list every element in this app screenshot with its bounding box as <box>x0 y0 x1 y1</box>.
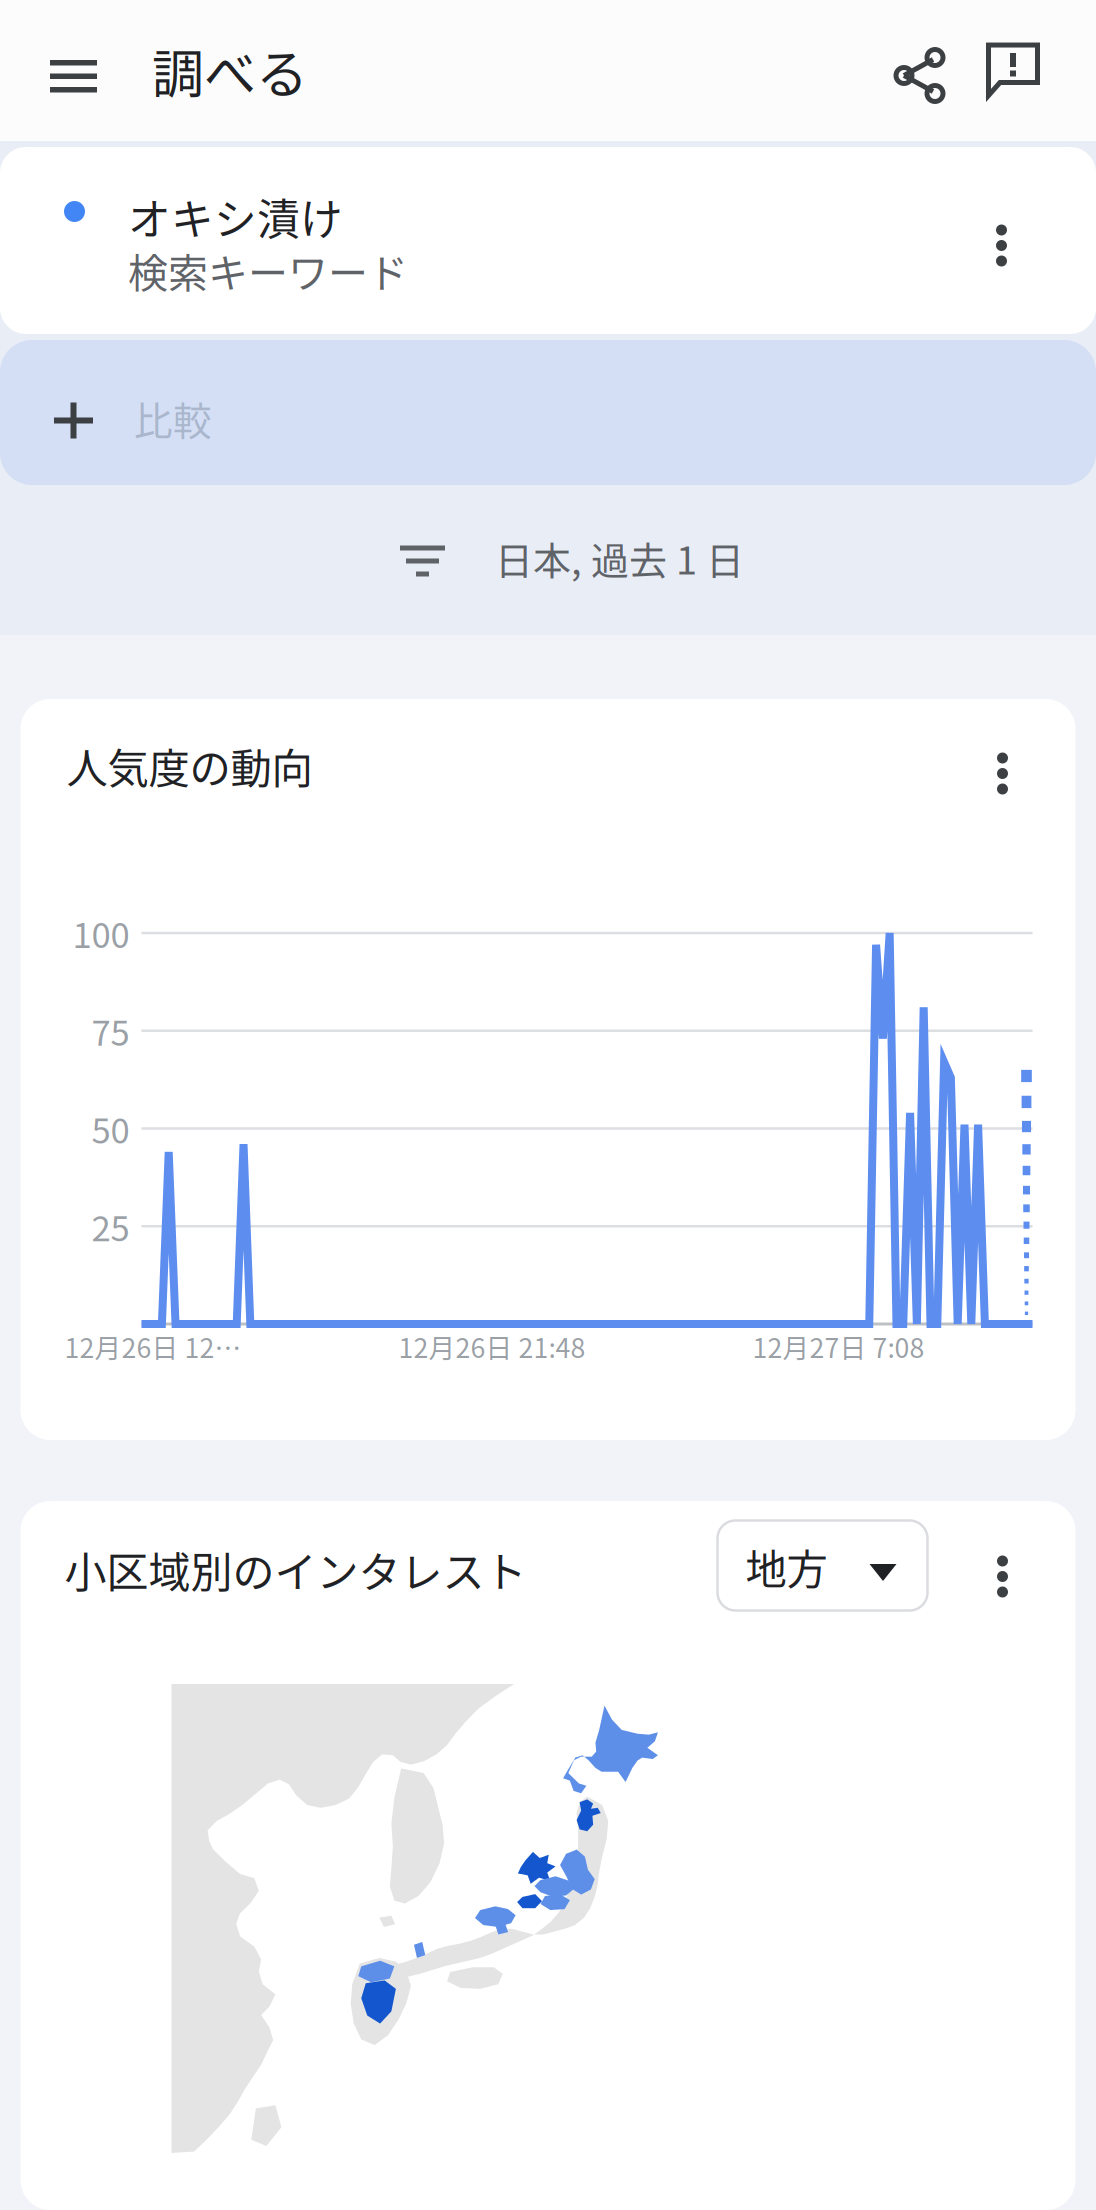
staticText: 小区域別のインタレスト <box>64 1539 526 1600</box>
button[interactable]: 日本, 過去 1 日 <box>0 485 1096 635</box>
staticText: 50 <box>91 1103 129 1154</box>
staticText: 調べる <box>152 33 308 108</box>
staticText: 25 <box>91 1201 129 1251</box>
staticText: 100 <box>72 908 129 958</box>
staticText: 人気度の動向 <box>66 736 312 795</box>
button[interactable]: オキシ漬け <box>0 147 1096 334</box>
button[interactable]: Share <box>892 0 986 141</box>
button[interactable]: Map options <box>962 1513 1042 1609</box>
staticText: 日本, 過去 1 日 <box>495 530 744 585</box>
button[interactable]: 地方 <box>717 1516 927 1606</box>
staticText: 75 <box>91 1006 129 1056</box>
button[interactable]: Menu <box>0 0 123 141</box>
staticText: 12月26日 12… <box>64 1327 241 1366</box>
staticText: 比較 <box>134 390 212 446</box>
staticText: 12月27日 7:08 <box>752 1327 924 1366</box>
button[interactable]: Chart options <box>962 709 1042 805</box>
button[interactable]: 比較 <box>0 340 1096 485</box>
staticText: 検索キーワード <box>128 241 408 299</box>
staticText: 12月26日 21:48 <box>398 1327 585 1366</box>
staticText: 地方 <box>745 1537 827 1596</box>
staticText: オキシ漬け <box>128 186 343 247</box>
button[interactable]: Send feedback <box>986 0 1096 141</box>
